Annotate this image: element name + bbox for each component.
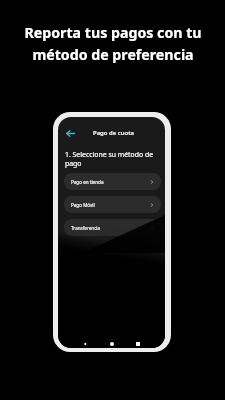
button[interactable]: Back bbox=[64, 127, 76, 139]
staticText: Pago Móvil bbox=[71, 202, 95, 208]
staticText: Pago en tienda bbox=[71, 179, 104, 185]
button[interactable]: Pago Móvil bbox=[64, 196, 161, 213]
button[interactable]: Pago en tienda bbox=[64, 173, 161, 190]
staticText: 1. Seleccione su método de pago bbox=[65, 150, 154, 168]
staticText: Pago de cuota bbox=[93, 129, 134, 137]
staticText: Transferencia bbox=[71, 225, 101, 231]
staticText: Reporta tus pagos con tu método de prefe… bbox=[24, 23, 202, 64]
button[interactable]: Transferencia bbox=[64, 219, 161, 236]
